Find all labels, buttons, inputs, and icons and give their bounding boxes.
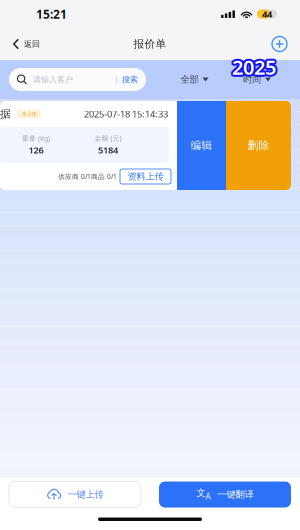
- staticText: A: [205, 491, 210, 502]
- staticText: 返回: [24, 39, 40, 49]
- staticText: 2025: [233, 55, 277, 82]
- button[interactable]: 一键上传: [9, 481, 141, 507]
- button[interactable]: 时间: [243, 68, 271, 91]
- staticText: 2025: [230, 54, 274, 80]
- staticText: 5184: [98, 144, 118, 156]
- staticText: 126: [28, 144, 43, 156]
- staticText: 删除: [247, 139, 269, 152]
- staticText: 报价单: [133, 37, 166, 50]
- button[interactable]: 编辑: [177, 101, 226, 190]
- staticText: 资料上传: [127, 171, 163, 182]
- staticText: 15:21: [36, 6, 67, 22]
- staticText: 2025: [232, 54, 276, 80]
- staticText: 文: [196, 487, 205, 499]
- staticText: 2025: [230, 52, 274, 79]
- staticText: 2025: [233, 52, 277, 79]
- staticText: 供应商 0/1商品 0/1: [58, 172, 117, 181]
- staticText: 金额 (元): [94, 134, 121, 143]
- staticText: 请输入客户: [33, 75, 73, 84]
- button[interactable]: 新增: [272, 29, 300, 59]
- button[interactable]: 请输入客户: [9, 68, 146, 91]
- button[interactable]: 删除: [226, 101, 291, 190]
- staticText: 据: [0, 107, 11, 120]
- staticText: 2025: [232, 56, 276, 82]
- staticText: 未上传: [21, 111, 36, 117]
- button[interactable]: 文: [159, 481, 291, 507]
- staticText: 编辑: [190, 139, 212, 152]
- staticText: 44: [262, 8, 272, 20]
- button[interactable]: 返回: [0, 29, 50, 59]
- staticText: 2025-07-18 15:14:33: [84, 108, 168, 120]
- staticText: 一键上传: [67, 489, 103, 500]
- button[interactable]: 全部: [180, 68, 208, 91]
- button[interactable]: 资料上传: [120, 169, 171, 184]
- staticText: 2025: [230, 55, 274, 82]
- staticText: 重量 (Kg): [22, 134, 50, 143]
- staticText: 搜索: [122, 75, 138, 84]
- staticText: 时间: [243, 74, 261, 85]
- staticText: 一键翻译: [217, 489, 253, 500]
- staticText: 2025: [232, 52, 276, 78]
- staticText: 2025: [234, 54, 278, 80]
- staticText: 全部: [180, 74, 198, 85]
